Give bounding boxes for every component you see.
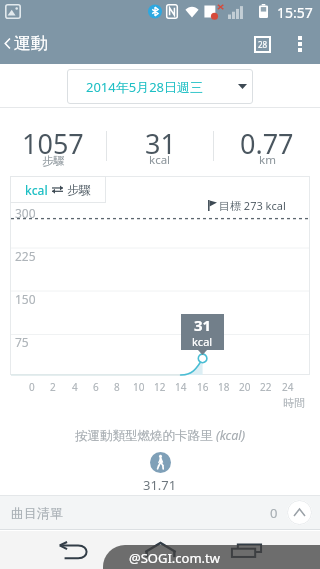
button[interactable]: 運動 (0, 27, 58, 60)
staticText: (kcal) (216, 427, 246, 444)
staticText: 6 (93, 380, 99, 394)
staticText: kcal (149, 152, 171, 168)
staticText: 運動 (14, 33, 48, 54)
staticText: 31.71 (143, 476, 177, 494)
staticText: 22 (260, 380, 272, 394)
staticText: 1057 (22, 125, 84, 162)
staticText: 曲目清單 (11, 505, 63, 521)
staticText: 步驟 (42, 154, 65, 168)
button[interactable]: Home (134, 532, 186, 568)
staticText: 24 (282, 380, 294, 394)
button[interactable]: More options (282, 26, 318, 62)
staticText: 300 (15, 205, 36, 221)
staticText: 目標 273 kcal (219, 198, 286, 213)
button[interactable]: Back (48, 532, 100, 568)
button[interactable]: 曲目清單 (0, 495, 320, 530)
staticText: 31 (145, 125, 176, 162)
staticText: kcal (25, 182, 48, 198)
button[interactable]: kcal (10, 176, 106, 203)
staticText: 步驟 (67, 182, 91, 197)
staticText: 16 (197, 380, 209, 394)
button[interactable]: Calendar (242, 24, 282, 64)
staticText: 20 (239, 380, 251, 394)
staticText: 12 (154, 380, 166, 394)
staticText: 28 (258, 39, 268, 50)
staticText: 18 (218, 380, 230, 394)
staticText: 8 (114, 380, 120, 394)
staticText: 2 (50, 380, 56, 394)
staticText: @SOGI.com.tw (129, 549, 220, 567)
staticText: 0 (270, 504, 278, 522)
staticText: 75 (15, 334, 29, 350)
staticText: 31 (194, 315, 212, 335)
button[interactable]: Expand (287, 500, 312, 525)
button[interactable]: Recents (220, 532, 272, 568)
staticText: 0 (29, 380, 35, 394)
staticText: 時間 (283, 396, 305, 410)
staticText: 0.77 (240, 125, 294, 162)
staticText: km (259, 152, 276, 168)
staticText: 2014年5月28日週三 (86, 78, 204, 96)
staticText: 15:57 (277, 3, 313, 22)
staticText: 按運動類型燃燒的卡路里 (75, 427, 216, 444)
staticText: kcal (192, 334, 213, 349)
staticText: 14 (175, 380, 187, 394)
staticText: 4 (72, 380, 78, 394)
staticText: 10 (133, 380, 145, 394)
staticText: 150 (15, 291, 36, 307)
staticText: 225 (15, 248, 36, 264)
button[interactable]: 2014年5月28日週三 (67, 69, 253, 104)
